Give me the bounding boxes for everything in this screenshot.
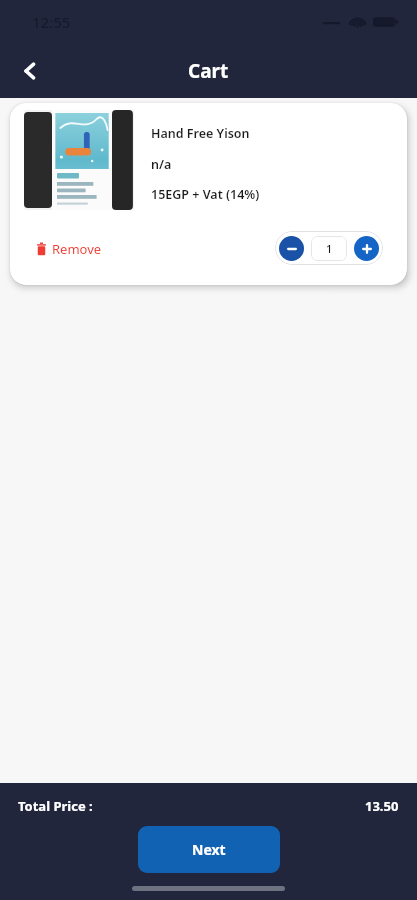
button[interactable]: Next — [138, 826, 280, 873]
staticText: Next — [192, 840, 226, 859]
staticText: Total Price : — [18, 797, 93, 815]
button[interactable]: Hand Free Yison — [10, 103, 407, 285]
button[interactable]: Back — [8, 49, 52, 93]
staticText: Hand Free Yison — [151, 125, 250, 142]
button[interactable]: Decrease quantity — [279, 236, 304, 261]
button[interactable]: Remove — [36, 240, 102, 258]
staticText: 15EGP + Vat (14%) — [151, 186, 260, 203]
staticText: n/a — [151, 156, 172, 173]
staticText: Cart — [188, 58, 229, 84]
staticText: 1 — [326, 241, 333, 256]
button[interactable]: Increase quantity — [354, 236, 379, 261]
staticText: Remove — [52, 240, 102, 258]
staticText: 13.50 — [365, 797, 399, 815]
staticText: 12:55 — [32, 12, 71, 32]
